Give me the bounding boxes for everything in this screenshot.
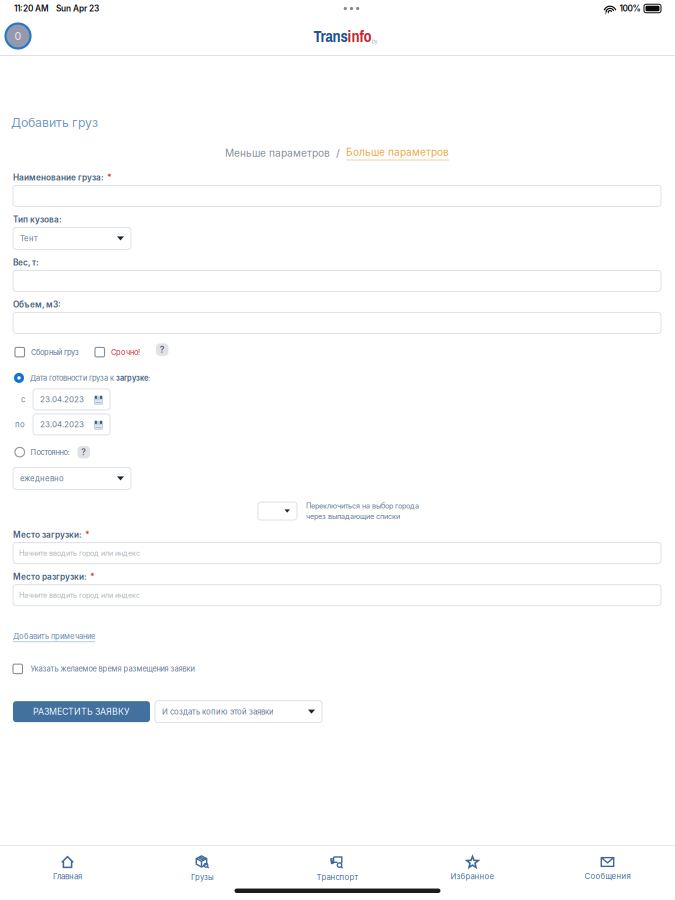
button[interactable]: Транспорт [270,855,405,882]
staticText: Добавить груз [11,115,98,130]
staticText: info [347,25,371,47]
button[interactable]: Сообщения [540,856,675,881]
button[interactable] [258,502,297,520]
staticText: ? [81,447,86,457]
staticText: с [21,395,25,404]
staticText: Грузы [191,872,214,882]
staticText: Постоянно: [30,448,69,457]
button[interactable]: Сборный груз [15,347,79,357]
staticText: * [107,172,112,182]
button[interactable]: Меньше параметров [225,147,330,159]
staticText: * [85,530,90,540]
staticText: by [371,36,377,46]
staticText: Главная [53,872,82,881]
button[interactable]: Help [77,446,90,458]
button[interactable]: РАЗМЕСТИТЬ ЗАЯВКУ [13,701,150,722]
button[interactable]: Help [156,343,168,356]
staticText: Сборный груз [31,348,79,357]
staticText: * [90,572,95,582]
button[interactable]: 23.04.2023 [33,414,110,435]
staticText: ежедневно [20,474,64,483]
staticText: Начните вводить город или индекс [19,549,140,557]
button[interactable]: Начните вводить город или индекс [13,585,661,606]
staticText: Sun Apr 23 [56,3,99,13]
staticText: РАЗМЕСТИТЬ ЗАЯВКУ [33,706,130,717]
staticText: Место разгрузки: [13,572,87,582]
staticText: Добавить примечание [13,632,95,641]
staticText: 23.04.2023 [40,395,84,404]
staticText: Начните вводить город или индекс [19,591,140,599]
button[interactable]: Тент [13,227,131,249]
staticText: загрузке [116,373,148,382]
button[interactable] [13,270,661,291]
staticText: Дата готовности груза к [30,373,116,382]
button[interactable]: Указать желаемое время размещения заявки [13,664,194,674]
button[interactable]: ежедневно [13,467,131,489]
button[interactable]: И создать копию этой заявки [155,701,322,723]
staticText: Сообщения [584,871,630,881]
staticText: Больше параметров [346,146,449,158]
staticText: Транспорт [316,872,358,882]
button[interactable]: 23.04.2023 [33,389,110,410]
button[interactable]: Profile [2,20,34,52]
staticText: Наименование груза: [13,172,104,182]
staticText: Указать желаемое время размещения заявки [30,664,194,673]
staticText: Тип кузова: [13,214,62,224]
staticText: Срочно! [111,348,140,357]
staticText: Вес, т: [13,257,39,267]
staticText: Переключиться на выбор города [306,501,419,510]
button[interactable]: Главная [0,856,135,881]
button[interactable]: Избранное [405,856,540,881]
staticText: по [15,420,25,429]
button[interactable] [13,185,661,206]
button[interactable]: Больше параметров [346,146,449,160]
staticText: И создать копию этой заявки [162,707,274,716]
staticText: Место загрузки: [13,530,82,540]
staticText: Объем, м3: [13,299,61,309]
staticText: Меньше параметров [225,147,330,159]
staticText: : [148,373,150,382]
staticText: 11:20 AM [14,3,49,13]
staticText: через выпадающие списки [306,512,400,521]
button[interactable] [13,312,661,333]
staticText: / [336,147,340,159]
button[interactable]: Начните вводить город или индекс [13,543,661,564]
staticText: Тент [20,234,38,243]
staticText: 0 [14,29,21,42]
button[interactable]: Грузы [135,855,270,882]
staticText: Trans [313,25,347,47]
staticText: ? [160,344,165,355]
staticText: Избранное [450,872,494,881]
staticText: 100% [619,3,640,13]
button[interactable]: Срочно! [95,347,140,357]
button[interactable]: Добавить примечание [13,632,95,642]
staticText: 23.04.2023 [40,420,84,429]
